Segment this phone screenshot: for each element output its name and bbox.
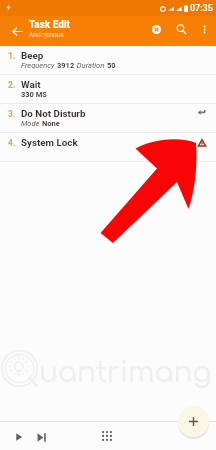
- staticText: 4.: [8, 138, 21, 148]
- staticText: uantrimang: [39, 357, 212, 388]
- staticText: Wait: [21, 79, 41, 90]
- staticText: 1.: [8, 51, 21, 61]
- button[interactable]: 4.: [0, 133, 216, 161]
- button[interactable]: 2.: [0, 75, 216, 103]
- staticText: 50: [107, 61, 116, 70]
- staticText: Duration: [75, 61, 107, 70]
- button[interactable]: Play: [7, 425, 31, 449]
- button[interactable]: 1.: [0, 46, 216, 74]
- staticText: Task Edit: [29, 19, 70, 31]
- staticText: 2.: [8, 80, 21, 90]
- button[interactable]: Skip next: [29, 425, 53, 449]
- button[interactable]: Add: [178, 406, 209, 437]
- staticText: 07:35: [190, 3, 213, 14]
- staticText: 330 MS: [21, 90, 47, 99]
- staticText: System Lock: [21, 137, 78, 148]
- button[interactable]: Apps: [95, 424, 119, 448]
- staticText: Frequency: [21, 61, 57, 70]
- button[interactable]: More options: [194, 19, 214, 39]
- button[interactable]: 3.: [0, 104, 216, 132]
- staticText: Anonymous: [29, 31, 64, 39]
- button[interactable]: Search: [170, 18, 192, 40]
- staticText: Beep: [21, 50, 44, 61]
- staticText: 3.: [8, 109, 21, 119]
- button[interactable]: Back: [5, 19, 29, 43]
- staticText: None: [42, 119, 60, 128]
- staticText: Mode: [21, 119, 42, 128]
- button[interactable]: Clear: [145, 18, 167, 40]
- staticText: 3912: [57, 61, 75, 70]
- staticText: Do Not Disturb: [21, 108, 86, 119]
